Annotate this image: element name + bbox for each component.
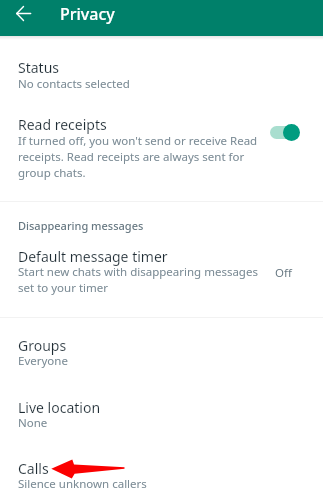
button[interactable]: Live location bbox=[0, 392, 323, 454]
staticText: If turned off, you won't send or receive… bbox=[18, 133, 261, 181]
staticText: Start new chats with disappearing messag… bbox=[18, 264, 261, 296]
staticText: Calls bbox=[18, 459, 49, 478]
staticText: Default message timer bbox=[18, 247, 168, 266]
button[interactable]: Default message timer bbox=[0, 240, 323, 310]
staticText: No contacts selected bbox=[18, 76, 261, 92]
staticText: Silence unknown callers bbox=[18, 476, 261, 492]
staticText: None bbox=[18, 415, 261, 431]
staticText: Live location bbox=[18, 398, 101, 417]
staticText: Off bbox=[275, 265, 292, 281]
staticText: Groups bbox=[18, 336, 67, 355]
button[interactable]: Calls bbox=[0, 454, 323, 499]
button[interactable]: Read receipts bbox=[0, 104, 323, 194]
button[interactable]: Read receipts toggle bbox=[270, 121, 300, 141]
staticText: Everyone bbox=[18, 353, 261, 369]
staticText: Status bbox=[18, 58, 60, 77]
button[interactable]: Status bbox=[0, 50, 323, 104]
staticText: Read receipts bbox=[18, 115, 107, 134]
staticText: Privacy bbox=[60, 3, 115, 25]
staticText: Disappearing messages bbox=[18, 218, 144, 233]
button[interactable]: Back bbox=[9, 0, 37, 27]
button[interactable]: Groups bbox=[0, 330, 323, 392]
